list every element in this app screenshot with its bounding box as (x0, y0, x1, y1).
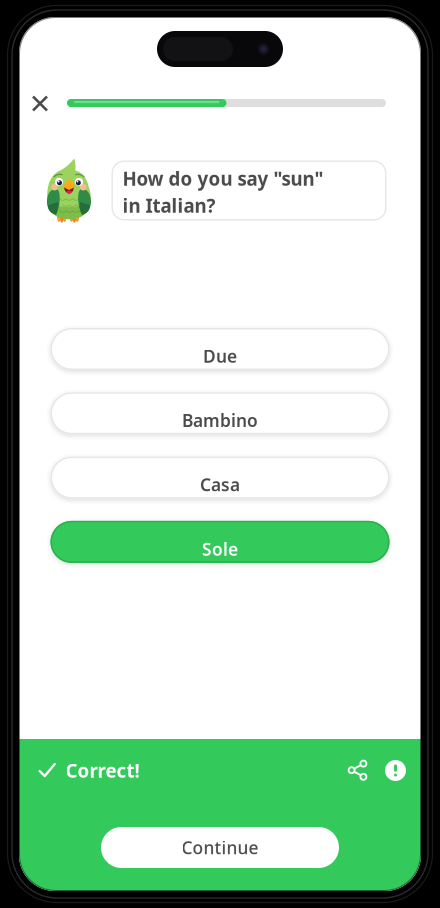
button[interactable]: Report a problem (367, 760, 406, 781)
staticText: Due (203, 344, 237, 367)
staticText: Bambino (182, 409, 258, 432)
button[interactable]: Bambino (50, 392, 389, 434)
staticText: How do you say "sun" (122, 166, 323, 191)
button[interactable]: Casa (50, 457, 389, 499)
staticText: Continue (181, 836, 258, 859)
button[interactable]: Continue (101, 827, 339, 868)
staticText: Sole (202, 537, 238, 560)
button[interactable]: Share (348, 760, 367, 781)
button[interactable]: Sole (50, 521, 389, 563)
button[interactable]: Due (50, 328, 389, 370)
staticText: Correct! (65, 758, 139, 783)
staticText: in Italian? (122, 193, 215, 218)
button[interactable]: Close (21, 84, 59, 122)
staticText: Casa (200, 473, 240, 496)
